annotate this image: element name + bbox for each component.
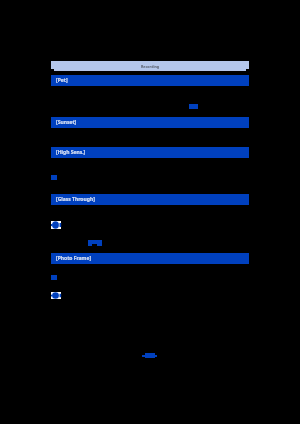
button[interactable]: [Sunset] <box>51 117 249 128</box>
staticText: Recording <box>141 64 160 69</box>
staticText: [Sunset] <box>56 119 77 126</box>
button[interactable]: Illustration <box>51 221 61 229</box>
button[interactable]: [Glass Through] <box>51 194 249 205</box>
staticText: [High Sens.] <box>56 149 86 156</box>
button[interactable]: [Pet] <box>51 75 249 86</box>
button[interactable]: [Photo Frame] <box>51 253 249 264</box>
staticText: [Photo Frame] <box>56 255 92 262</box>
staticText: [Glass Through] <box>56 196 95 203</box>
button[interactable]: [High Sens.] <box>51 147 249 158</box>
button[interactable]: Illustration <box>51 292 61 299</box>
button[interactable]: Recording <box>51 61 249 69</box>
staticText: [Pet] <box>56 77 68 84</box>
